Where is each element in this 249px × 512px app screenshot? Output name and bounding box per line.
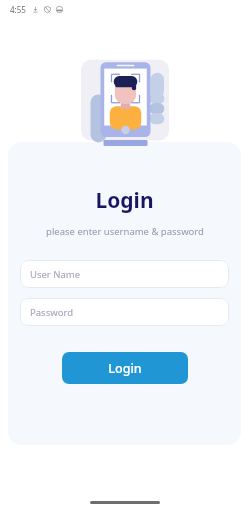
- staticText: Password: [30, 306, 73, 319]
- button[interactable]: Password: [20, 298, 229, 326]
- staticText: please enter username & password: [46, 225, 204, 238]
- staticText: Login: [108, 360, 142, 377]
- button[interactable]: User Name: [20, 260, 229, 288]
- staticText: User Name: [30, 268, 81, 281]
- staticText: 4:55: [10, 4, 26, 15]
- other: Face login illustration: [75, 56, 175, 152]
- staticText: Login: [95, 186, 154, 215]
- button[interactable]: Login: [62, 352, 188, 384]
